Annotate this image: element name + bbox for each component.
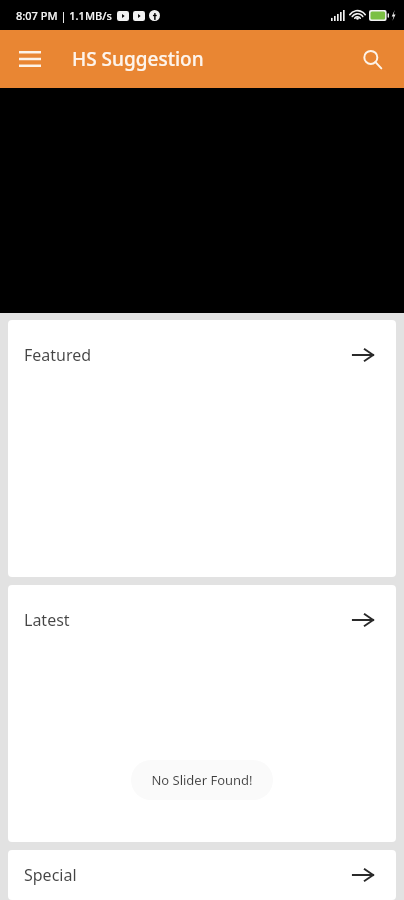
button[interactable]: Latest: [8, 585, 396, 842]
staticText: Special: [24, 864, 77, 886]
button[interactable]: Open navigation menu: [6, 35, 54, 83]
staticText: Featured: [24, 344, 92, 366]
staticText: Latest: [24, 609, 70, 631]
staticText: 8:07 PM | 1.1MB/s: [16, 8, 112, 23]
staticText: HS Suggestion: [72, 46, 204, 72]
button[interactable]: See all Latest: [346, 603, 380, 637]
button[interactable]: Featured: [8, 320, 396, 577]
button[interactable]: Special: [8, 850, 396, 900]
button[interactable]: See all Special: [346, 858, 380, 892]
staticText: No Slider Found!: [151, 771, 253, 789]
button[interactable]: See all Featured: [346, 338, 380, 372]
button[interactable]: Search: [348, 35, 396, 83]
